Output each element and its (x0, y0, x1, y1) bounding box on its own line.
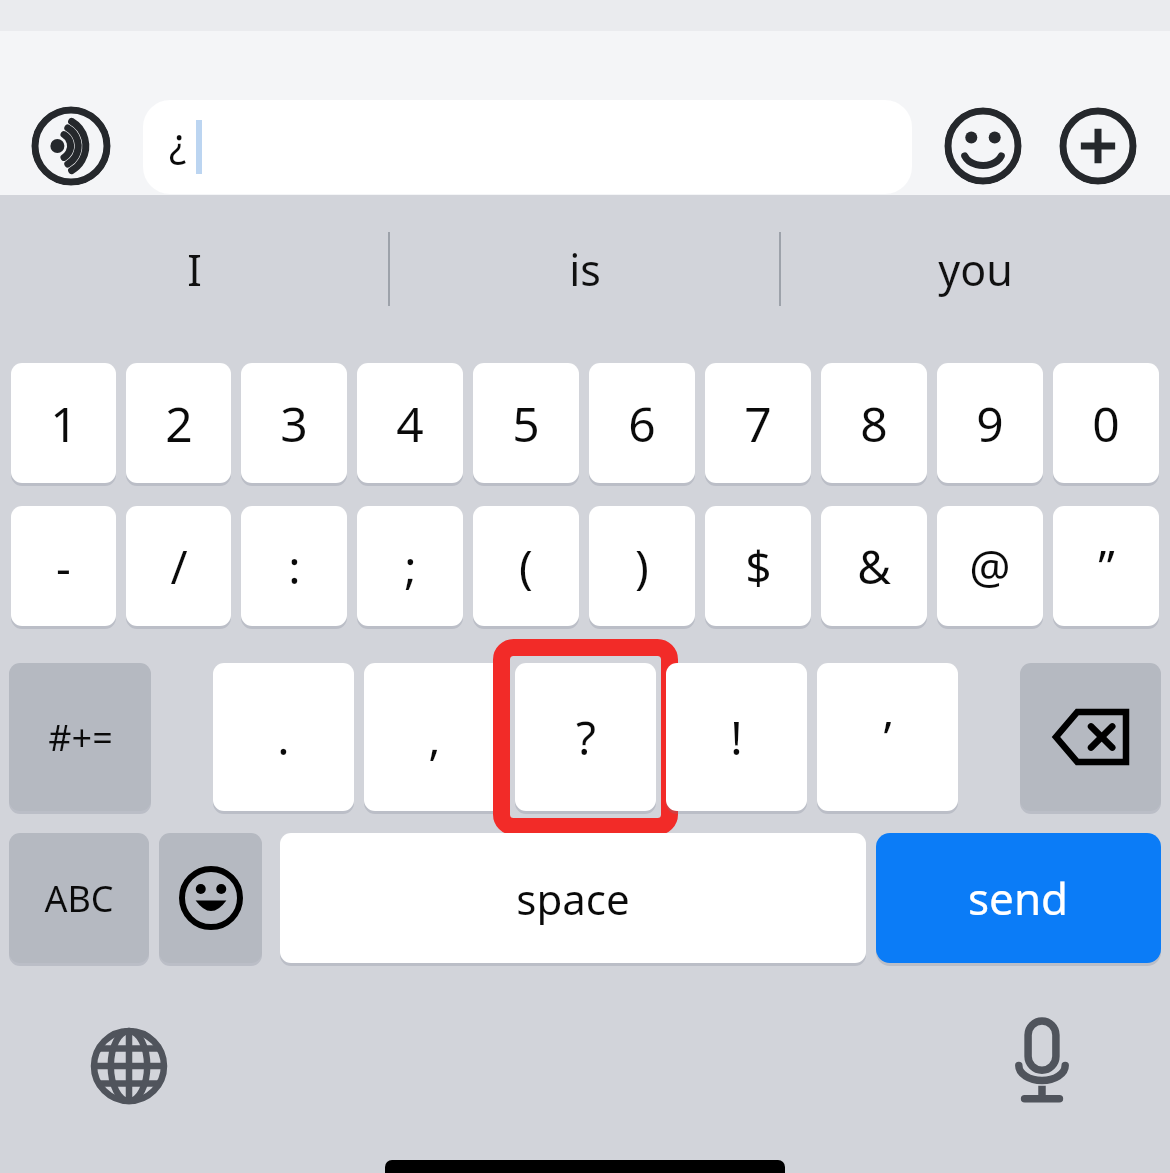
button[interactable]: 7 (705, 363, 811, 483)
button[interactable]: send (876, 833, 1161, 963)
staticText: ! (730, 706, 743, 769)
staticText: 1 (50, 391, 78, 456)
button[interactable]: Next keyboard (86, 1023, 172, 1109)
button[interactable]: Add (1059, 107, 1137, 185)
staticText: 3 (280, 391, 308, 456)
button[interactable]: 2 (126, 363, 231, 483)
staticText: 7 (744, 391, 772, 456)
staticText: : (288, 535, 301, 598)
button[interactable]: . (213, 663, 354, 811)
button[interactable]: : (241, 506, 347, 626)
button[interactable]: is (390, 195, 779, 343)
staticText: #+= (48, 713, 113, 762)
button[interactable]: 1 (11, 363, 116, 483)
staticText: 9 (976, 391, 1004, 456)
button[interactable]: 3 (241, 363, 347, 483)
staticText: ; (404, 535, 417, 598)
staticText: & (857, 535, 891, 598)
staticText: 8 (860, 391, 888, 456)
staticText: you (938, 240, 1013, 299)
button[interactable]: ! (666, 663, 807, 811)
button[interactable]: 9 (937, 363, 1043, 483)
staticText: is (569, 240, 601, 299)
staticText: 6 (628, 391, 656, 456)
button[interactable]: ” (1053, 506, 1159, 626)
staticText: space (516, 870, 630, 927)
button[interactable]: ¿ (143, 100, 912, 194)
button[interactable]: $ (705, 506, 811, 626)
button[interactable]: you (781, 195, 1170, 343)
button[interactable]: & (821, 506, 927, 626)
button[interactable]: - (11, 506, 116, 626)
button[interactable]: Dictation (996, 1015, 1088, 1107)
button[interactable]: ; (357, 506, 463, 626)
button[interactable]: 0 (1053, 363, 1159, 483)
staticText: I (187, 240, 202, 299)
staticText: @ (969, 535, 1011, 598)
staticText: 0 (1092, 391, 1120, 456)
button[interactable]: ) (589, 506, 695, 626)
staticText: ? (576, 706, 596, 769)
staticText: . (277, 706, 290, 769)
button[interactable]: Stickers (944, 107, 1022, 185)
button[interactable]: , (364, 663, 505, 811)
button[interactable]: Emoji (159, 833, 262, 963)
staticText: ’ (883, 706, 892, 769)
button[interactable]: Apps (31, 106, 111, 186)
button[interactable]: ’ (817, 663, 958, 811)
staticText: ( (519, 535, 533, 598)
button[interactable]: 8 (821, 363, 927, 483)
staticText: send (968, 868, 1069, 928)
staticText: ABC (44, 874, 114, 923)
button[interactable]: Delete (1020, 663, 1161, 811)
staticText: $ (745, 535, 772, 598)
staticText: - (56, 535, 71, 598)
button[interactable]: 5 (473, 363, 579, 483)
staticText: 4 (396, 391, 424, 456)
staticText: 2 (165, 391, 193, 456)
button[interactable]: @ (937, 506, 1043, 626)
button[interactable]: 4 (357, 363, 463, 483)
staticText: ) (635, 535, 649, 598)
staticText: / (170, 535, 188, 598)
staticText: 5 (512, 391, 540, 456)
button[interactable]: #+= (9, 663, 151, 811)
staticText: ¿ (169, 114, 187, 168)
staticText: ” (1098, 535, 1115, 598)
staticText: , (428, 706, 441, 769)
button[interactable]: / (126, 506, 231, 626)
button[interactable]: ABC (9, 833, 149, 963)
button[interactable]: ( (473, 506, 579, 626)
button[interactable]: space (280, 833, 866, 963)
button[interactable]: I (0, 195, 388, 343)
button[interactable]: ? (515, 663, 656, 811)
button[interactable]: 6 (589, 363, 695, 483)
